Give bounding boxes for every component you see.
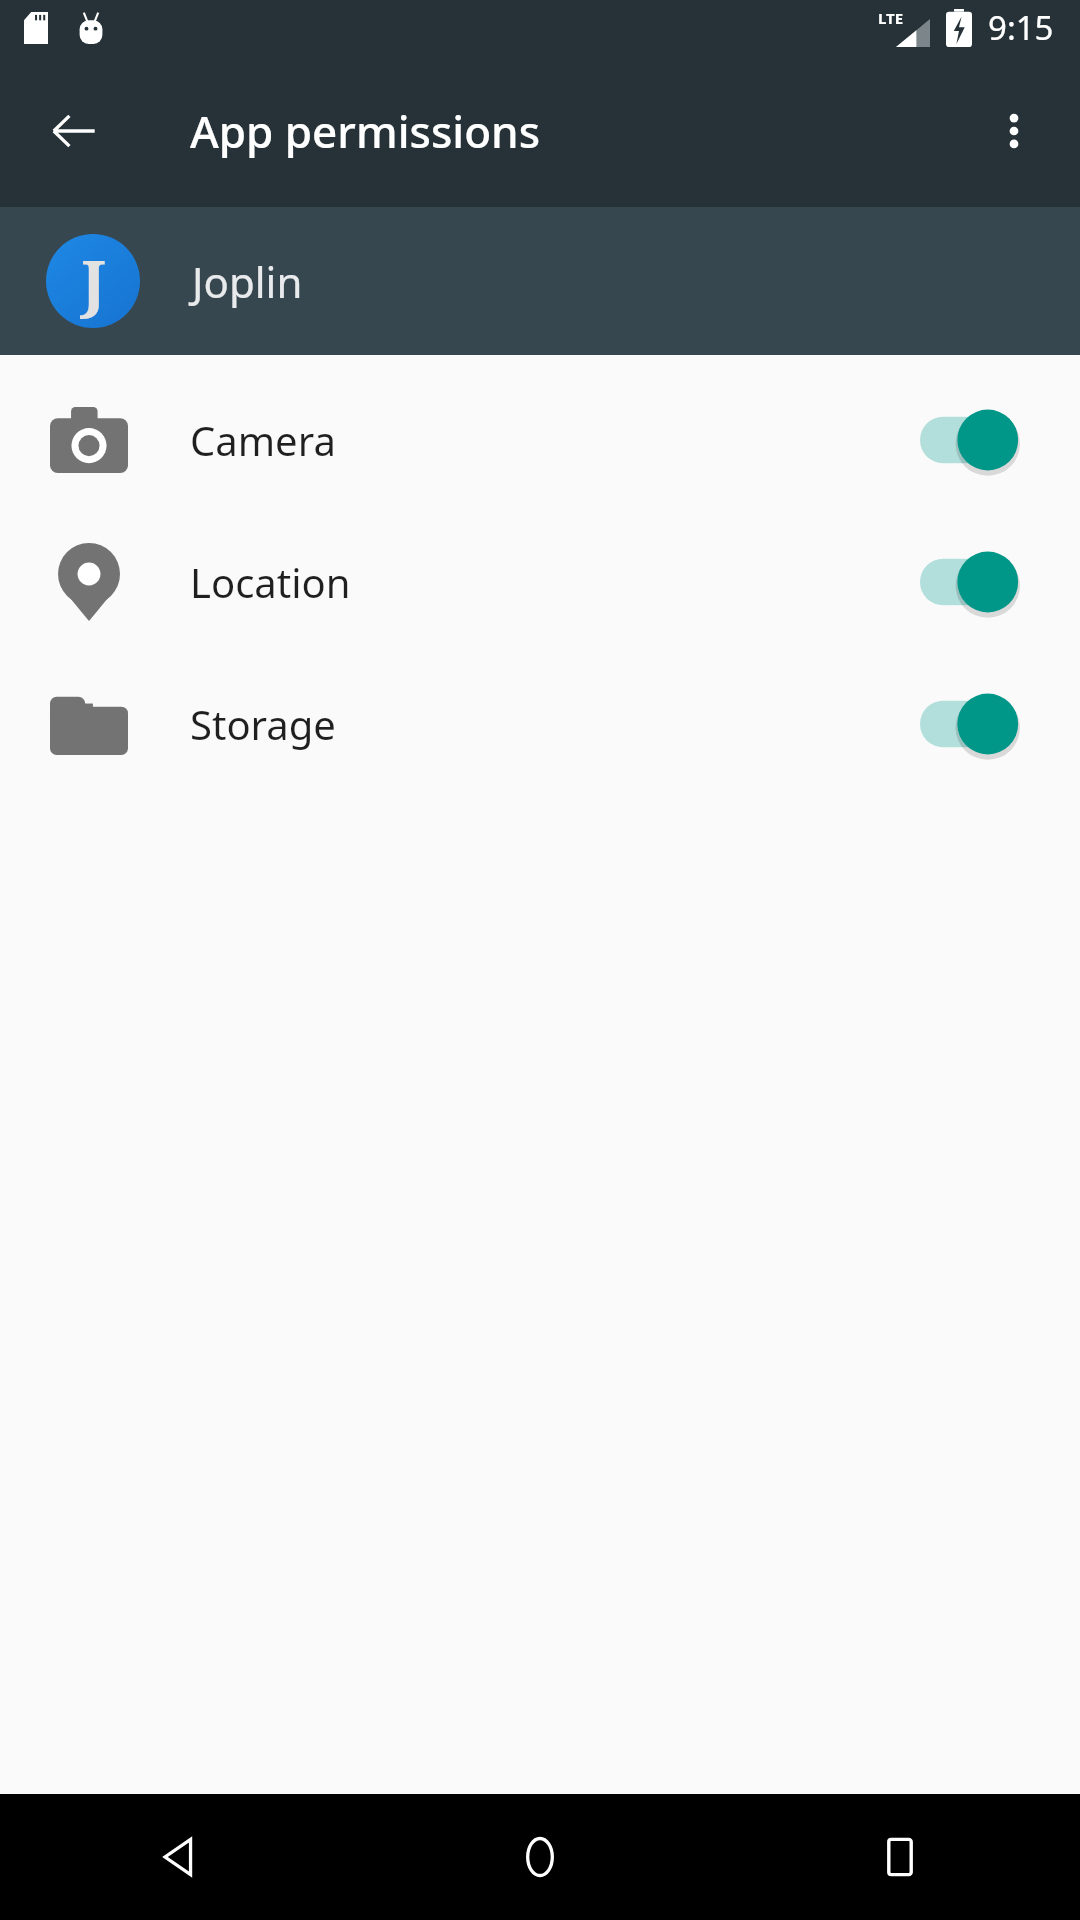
staticText: Storage bbox=[190, 697, 336, 751]
button[interactable]: Location bbox=[0, 511, 1080, 653]
staticText: Location bbox=[190, 555, 351, 609]
button[interactable]: Back bbox=[0, 1794, 360, 1920]
button[interactable]: Recent apps bbox=[720, 1794, 1080, 1920]
staticText: Joplin bbox=[192, 253, 303, 310]
button[interactable]: Camera bbox=[0, 369, 1080, 511]
staticText: App permissions bbox=[190, 101, 541, 161]
button[interactable]: Storage bbox=[0, 653, 1080, 795]
staticText: 9:15 bbox=[988, 5, 1054, 50]
staticText: Camera bbox=[190, 413, 336, 467]
button[interactable]: Home bbox=[360, 1794, 720, 1920]
staticText: J bbox=[81, 239, 106, 323]
button[interactable]: J bbox=[0, 207, 1080, 355]
button[interactable]: More options bbox=[966, 83, 1062, 179]
staticText: LTE bbox=[878, 8, 904, 28]
button[interactable]: Back bbox=[26, 83, 122, 179]
